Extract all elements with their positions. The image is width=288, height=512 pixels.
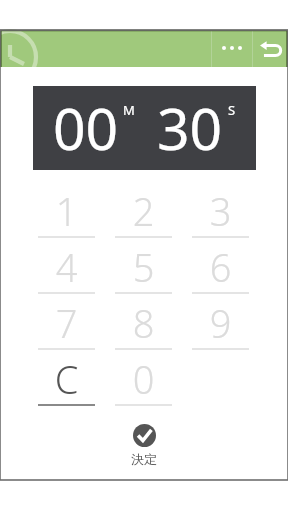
staticText: 5 — [115, 241, 172, 293]
button[interactable]: 6 — [192, 238, 249, 294]
staticText: C — [38, 353, 95, 405]
staticText: 4 — [38, 241, 95, 293]
staticText: 7 — [38, 297, 95, 349]
button[interactable]: C — [38, 350, 95, 406]
staticText: M — [123, 101, 135, 119]
button[interactable]: 8 — [115, 294, 172, 350]
button[interactable]: 決定 — [111, 421, 177, 467]
staticText: S — [228, 101, 236, 119]
staticText: 00 — [53, 89, 119, 167]
staticText: 6 — [192, 241, 249, 293]
button[interactable]: 3 — [192, 182, 249, 238]
button[interactable]: 1 — [38, 182, 95, 238]
staticText: 2 — [115, 185, 172, 237]
button[interactable]: Back — [253, 30, 288, 67]
staticText: 決定 — [131, 451, 157, 467]
staticText: 8 — [115, 297, 172, 349]
button[interactable]: 5 — [115, 238, 172, 294]
button[interactable]: 0 — [115, 350, 172, 406]
button[interactable]: 4 — [38, 238, 95, 294]
button[interactable]: More options — [212, 30, 252, 67]
staticText: 1 — [38, 185, 95, 237]
button[interactable]: 7 — [38, 294, 95, 350]
button[interactable]: 9 — [192, 294, 249, 350]
staticText: 0 — [115, 353, 172, 405]
button[interactable]: 2 — [115, 182, 172, 238]
staticText: 9 — [192, 297, 249, 349]
staticText: 3 — [192, 185, 249, 237]
staticText: 30 — [157, 89, 223, 167]
